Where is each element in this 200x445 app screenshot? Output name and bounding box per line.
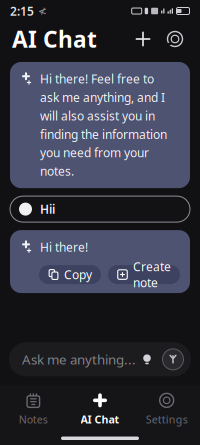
staticText: AI Chat xyxy=(12,24,97,54)
button[interactable]: New chat xyxy=(130,26,156,52)
button[interactable]: Chat history xyxy=(162,26,188,52)
button[interactable]: AI Chat xyxy=(67,385,133,433)
staticText: ≮ xyxy=(38,5,47,17)
staticText: Hii xyxy=(40,201,55,217)
staticText: Notes xyxy=(19,412,48,426)
button[interactable]: Create note xyxy=(108,265,180,284)
button[interactable]: Settings xyxy=(133,385,200,433)
staticText: Ask me anything... xyxy=(22,350,136,368)
button[interactable]: Send xyxy=(161,347,185,371)
staticText: Create note xyxy=(133,259,171,290)
staticText: 2:15 xyxy=(10,3,34,19)
staticText: Hi there! xyxy=(40,239,88,255)
staticText: Copy xyxy=(64,267,92,282)
button[interactable]: Copy xyxy=(39,265,101,284)
staticText: Hi there! Feel free to ask me anything, … xyxy=(40,71,167,179)
staticText: AI Chat xyxy=(80,412,119,426)
staticText: Settings xyxy=(146,412,188,426)
button[interactable]: Notes xyxy=(0,385,67,433)
button[interactable]: Suggestions xyxy=(136,348,158,370)
